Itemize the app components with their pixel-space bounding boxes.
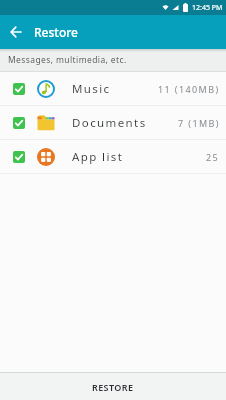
staticText: Music — [72, 81, 111, 97]
staticText: RESTORE — [92, 381, 134, 393]
staticText: Messages, multimedia, etc. — [8, 54, 127, 66]
staticText: 11 (140MB) — [158, 83, 220, 95]
staticText: 25 — [206, 151, 220, 163]
staticText: 7 (1MB) — [178, 117, 220, 129]
button[interactable]: RESTORE — [0, 373, 226, 400]
staticText: App list — [72, 149, 124, 165]
staticText: Restore — [34, 24, 78, 40]
button[interactable]: Documents — [0, 106, 226, 139]
button[interactable] — [0, 16, 32, 48]
staticText: Documents — [72, 115, 147, 131]
staticText: 12:45 PM — [192, 3, 223, 13]
button[interactable]: Music — [0, 72, 226, 105]
button[interactable]: App list — [0, 140, 226, 173]
